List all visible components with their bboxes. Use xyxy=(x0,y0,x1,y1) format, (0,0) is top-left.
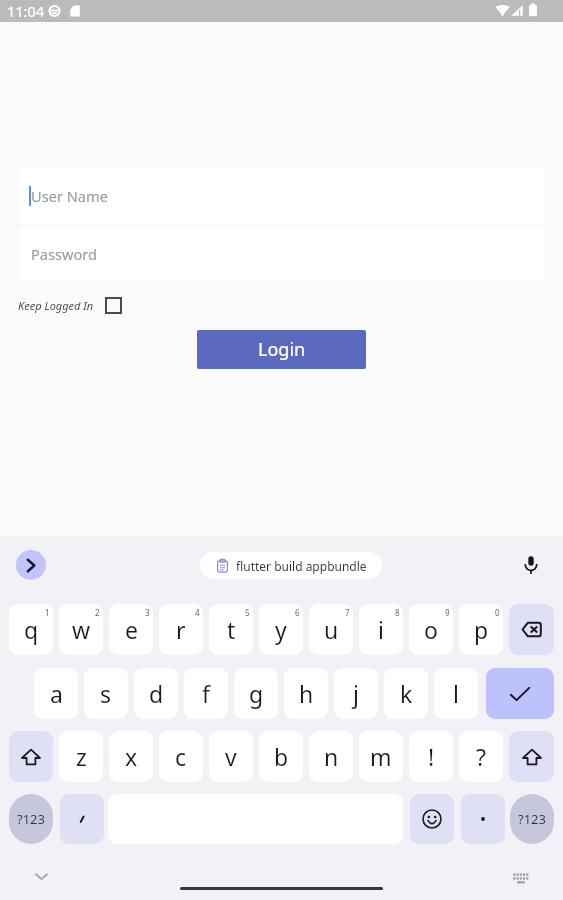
staticText: v xyxy=(225,741,237,772)
staticText: 11:04 xyxy=(7,1,45,21)
button[interactable]: c xyxy=(159,731,203,782)
staticText: b xyxy=(274,741,289,772)
staticText: 1 xyxy=(45,607,50,618)
button[interactable]: q xyxy=(9,604,53,655)
staticText: a xyxy=(50,678,63,709)
button[interactable]: d xyxy=(134,668,178,719)
button[interactable]: User Name xyxy=(20,168,544,224)
staticText: m xyxy=(370,741,392,772)
staticText: 7 xyxy=(345,607,350,618)
button[interactable]: backspace xyxy=(509,604,554,655)
button[interactable]: n xyxy=(309,731,353,782)
button[interactable]: Switch keyboard xyxy=(507,864,535,892)
button[interactable]: shift xyxy=(9,731,53,782)
button[interactable]: u xyxy=(309,604,353,655)
button[interactable]: l xyxy=(434,668,478,719)
button[interactable]: Voice input xyxy=(516,550,546,580)
staticText: j xyxy=(353,678,359,709)
staticText: q xyxy=(24,614,39,645)
staticText: User Name xyxy=(31,186,108,206)
button[interactable]: Hide keyboard xyxy=(27,862,55,890)
button[interactable]: j xyxy=(334,668,378,719)
staticText: h xyxy=(299,678,314,709)
staticText: w xyxy=(72,614,91,645)
staticText: 6 xyxy=(295,607,300,618)
staticText: u xyxy=(324,614,339,645)
button[interactable]: t xyxy=(209,604,253,655)
button[interactable]: w xyxy=(59,604,103,655)
staticText: Keep Logged In xyxy=(18,298,94,313)
staticText: c xyxy=(175,741,187,772)
button[interactable]: ?123 xyxy=(510,794,554,844)
staticText: t xyxy=(227,614,236,645)
button[interactable]: Emoji xyxy=(410,794,454,844)
button[interactable]: g xyxy=(234,668,278,719)
button[interactable]: v xyxy=(209,731,253,782)
button[interactable]: o xyxy=(409,604,453,655)
staticText: k xyxy=(400,678,413,709)
staticText: 8 xyxy=(395,607,400,618)
staticText: g xyxy=(249,678,264,709)
button[interactable]: Period xyxy=(461,794,505,844)
staticText: r xyxy=(176,614,186,645)
button[interactable]: a xyxy=(34,668,78,719)
staticText: s xyxy=(100,678,112,709)
button[interactable]: ?123 xyxy=(9,794,53,844)
button[interactable]: Keep Logged In xyxy=(105,297,122,314)
button[interactable]: Comma xyxy=(60,794,104,844)
staticText: n xyxy=(324,741,339,772)
staticText: Password xyxy=(31,244,98,264)
button[interactable]: p xyxy=(459,604,503,655)
button[interactable]: e xyxy=(109,604,153,655)
button[interactable]: ? xyxy=(459,731,503,782)
staticText: e xyxy=(125,614,138,645)
button[interactable]: enter xyxy=(486,668,554,719)
button[interactable]: r xyxy=(159,604,203,655)
button[interactable]: h xyxy=(284,668,328,719)
button[interactable]: Next suggestions xyxy=(16,550,46,580)
staticText: 5 xyxy=(245,607,250,618)
staticText: l xyxy=(453,678,459,709)
staticText: d xyxy=(149,678,164,709)
button[interactable]: ! xyxy=(409,731,453,782)
staticText: i xyxy=(378,614,384,645)
staticText: 0 xyxy=(495,607,500,618)
button[interactable]: f xyxy=(184,668,228,719)
button[interactable]: m xyxy=(359,731,403,782)
button[interactable]: flutter build appbundle xyxy=(200,552,382,579)
staticText: ? xyxy=(476,741,486,772)
staticText: 2 xyxy=(95,607,100,618)
staticText: ?123 xyxy=(17,810,45,828)
staticText: ! xyxy=(428,741,435,772)
staticText: y xyxy=(275,614,287,645)
button[interactable]: shift xyxy=(509,731,554,782)
button[interactable]: Password xyxy=(20,228,544,280)
staticText: 3 xyxy=(145,607,150,618)
staticText: flutter build appbundle xyxy=(236,558,367,574)
button[interactable]: z xyxy=(59,731,103,782)
staticText: o xyxy=(424,614,438,645)
button[interactable]: Login xyxy=(197,330,366,369)
button[interactable]: k xyxy=(384,668,428,719)
button[interactable]: x xyxy=(109,731,153,782)
button[interactable]: i xyxy=(359,604,403,655)
button[interactable]: y xyxy=(259,604,303,655)
staticText: p xyxy=(474,614,489,645)
staticText: f xyxy=(202,678,210,709)
staticText: ?123 xyxy=(518,810,546,828)
staticText: z xyxy=(76,741,87,772)
staticText: x xyxy=(125,741,138,772)
button[interactable]: s xyxy=(84,668,128,719)
staticText: 9 xyxy=(445,607,450,618)
button[interactable]: b xyxy=(259,731,303,782)
staticText: Login xyxy=(258,337,306,362)
staticText: 4 xyxy=(195,607,200,618)
